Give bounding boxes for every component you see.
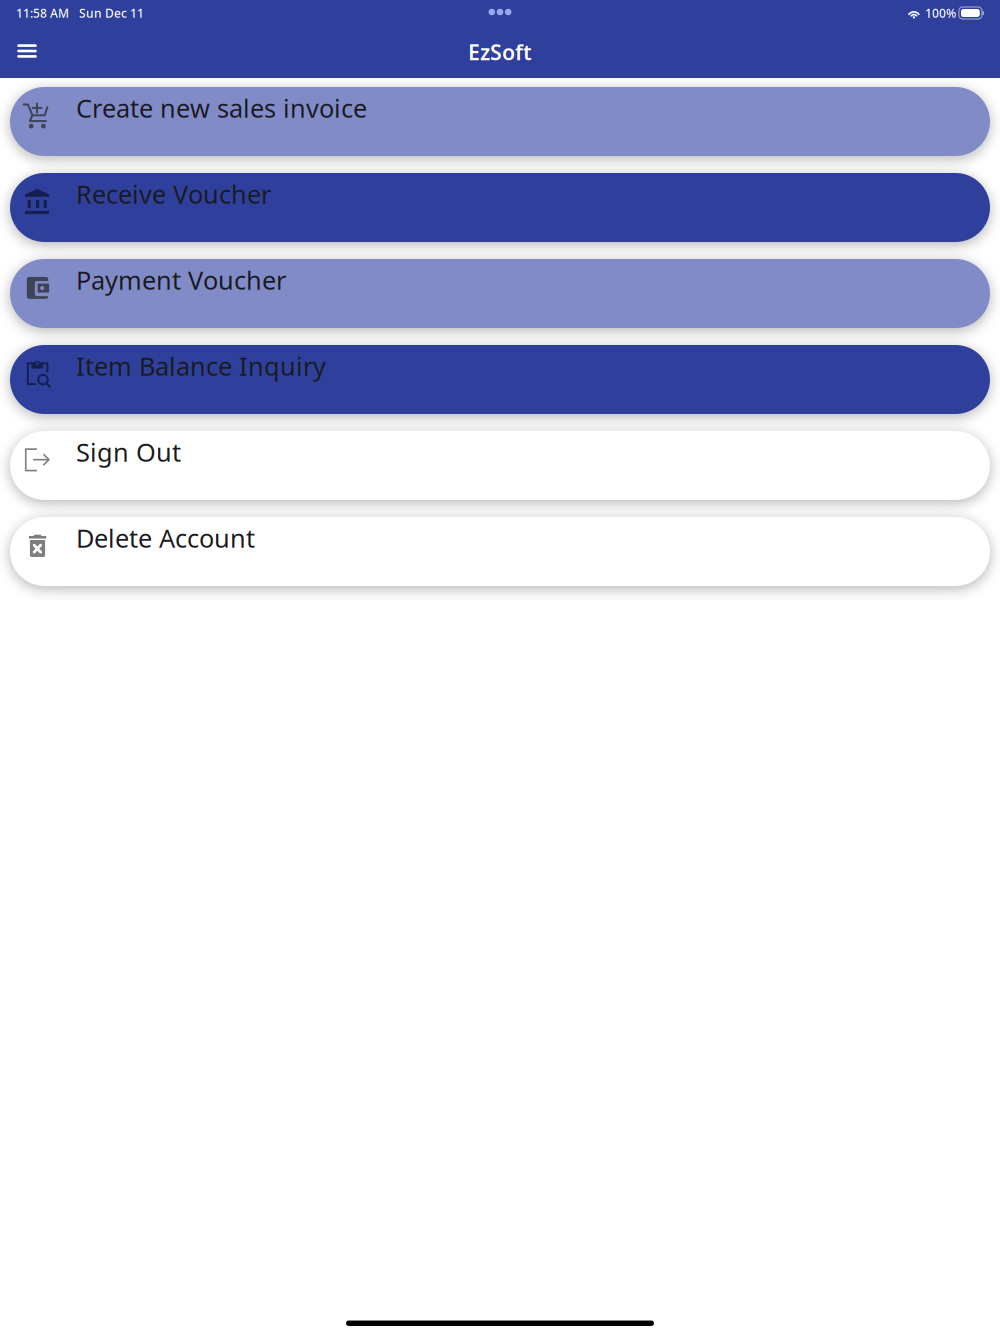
staticText: Item Balance Inquiry bbox=[76, 349, 326, 383]
button[interactable]: Payment Voucher bbox=[10, 259, 990, 328]
button[interactable]: Item Balance Inquiry bbox=[10, 345, 990, 414]
button[interactable]: Menu bbox=[5, 29, 49, 75]
staticText: Create new sales invoice bbox=[76, 91, 367, 125]
button[interactable]: Sign Out bbox=[10, 431, 990, 500]
staticText: Sign Out bbox=[76, 435, 181, 469]
staticText: 11:58 AM bbox=[16, 5, 69, 21]
button[interactable]: Delete Account bbox=[10, 517, 990, 586]
button[interactable]: Create new sales invoice bbox=[10, 87, 990, 156]
button[interactable]: Receive Voucher bbox=[10, 173, 990, 242]
staticText: 100% bbox=[925, 5, 956, 21]
staticText: Payment Voucher bbox=[76, 263, 286, 297]
staticText: Receive Voucher bbox=[76, 177, 271, 211]
staticText: Sun Dec 11 bbox=[79, 5, 144, 21]
staticText: EzSoft bbox=[468, 38, 532, 66]
staticText: Delete Account bbox=[76, 521, 255, 555]
